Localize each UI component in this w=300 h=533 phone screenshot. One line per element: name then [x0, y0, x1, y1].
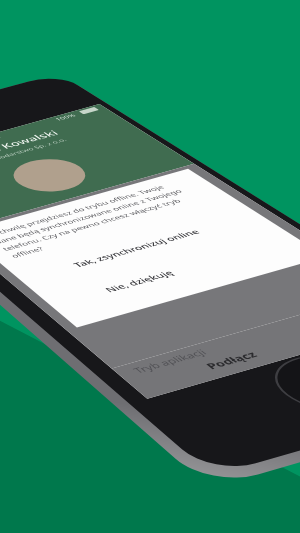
button[interactable]: [0, 0, 300, 533]
